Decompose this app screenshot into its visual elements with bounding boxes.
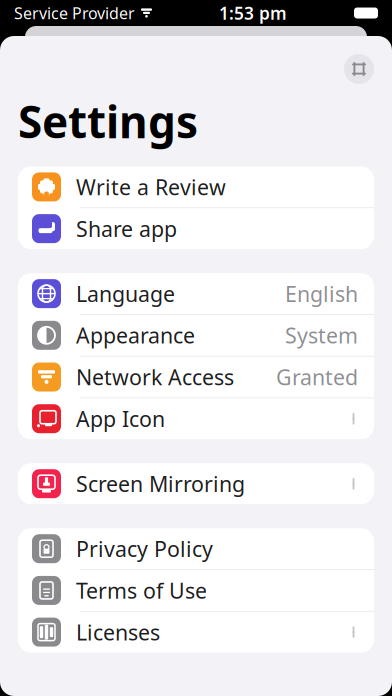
staticText: English — [285, 279, 358, 308]
staticText: Granted — [276, 363, 358, 391]
staticText: Screen Mirroring — [76, 470, 245, 498]
staticText: Service Provider — [14, 2, 135, 24]
staticText: Settings — [18, 92, 198, 150]
button[interactable]: Share app — [18, 208, 374, 249]
button[interactable]: Network Access — [18, 356, 374, 398]
staticText: App Icon — [76, 405, 165, 433]
staticText: Licenses — [76, 618, 160, 646]
staticText: System — [285, 321, 358, 349]
staticText: Language — [76, 279, 175, 308]
staticText: Write a Review — [76, 173, 226, 201]
staticText: Share app — [76, 214, 177, 243]
button[interactable]: Language — [18, 273, 374, 315]
button[interactable]: Terms of Use — [18, 570, 374, 612]
staticText: 1:53 pm — [219, 1, 287, 24]
button[interactable]: Appearance — [18, 315, 374, 356]
button[interactable]: Write a Review — [18, 166, 374, 208]
button[interactable]: Screen Mirroring — [18, 463, 374, 504]
button[interactable]: Licenses — [18, 612, 374, 653]
button[interactable]: App Icon — [18, 398, 374, 439]
staticText: Privacy Policy — [76, 535, 213, 563]
staticText: Appearance — [76, 321, 195, 349]
button[interactable]: Close — [344, 54, 374, 84]
staticText: Network Access — [76, 363, 234, 391]
staticText: Terms of Use — [76, 576, 207, 605]
button[interactable]: Privacy Policy — [18, 528, 374, 570]
